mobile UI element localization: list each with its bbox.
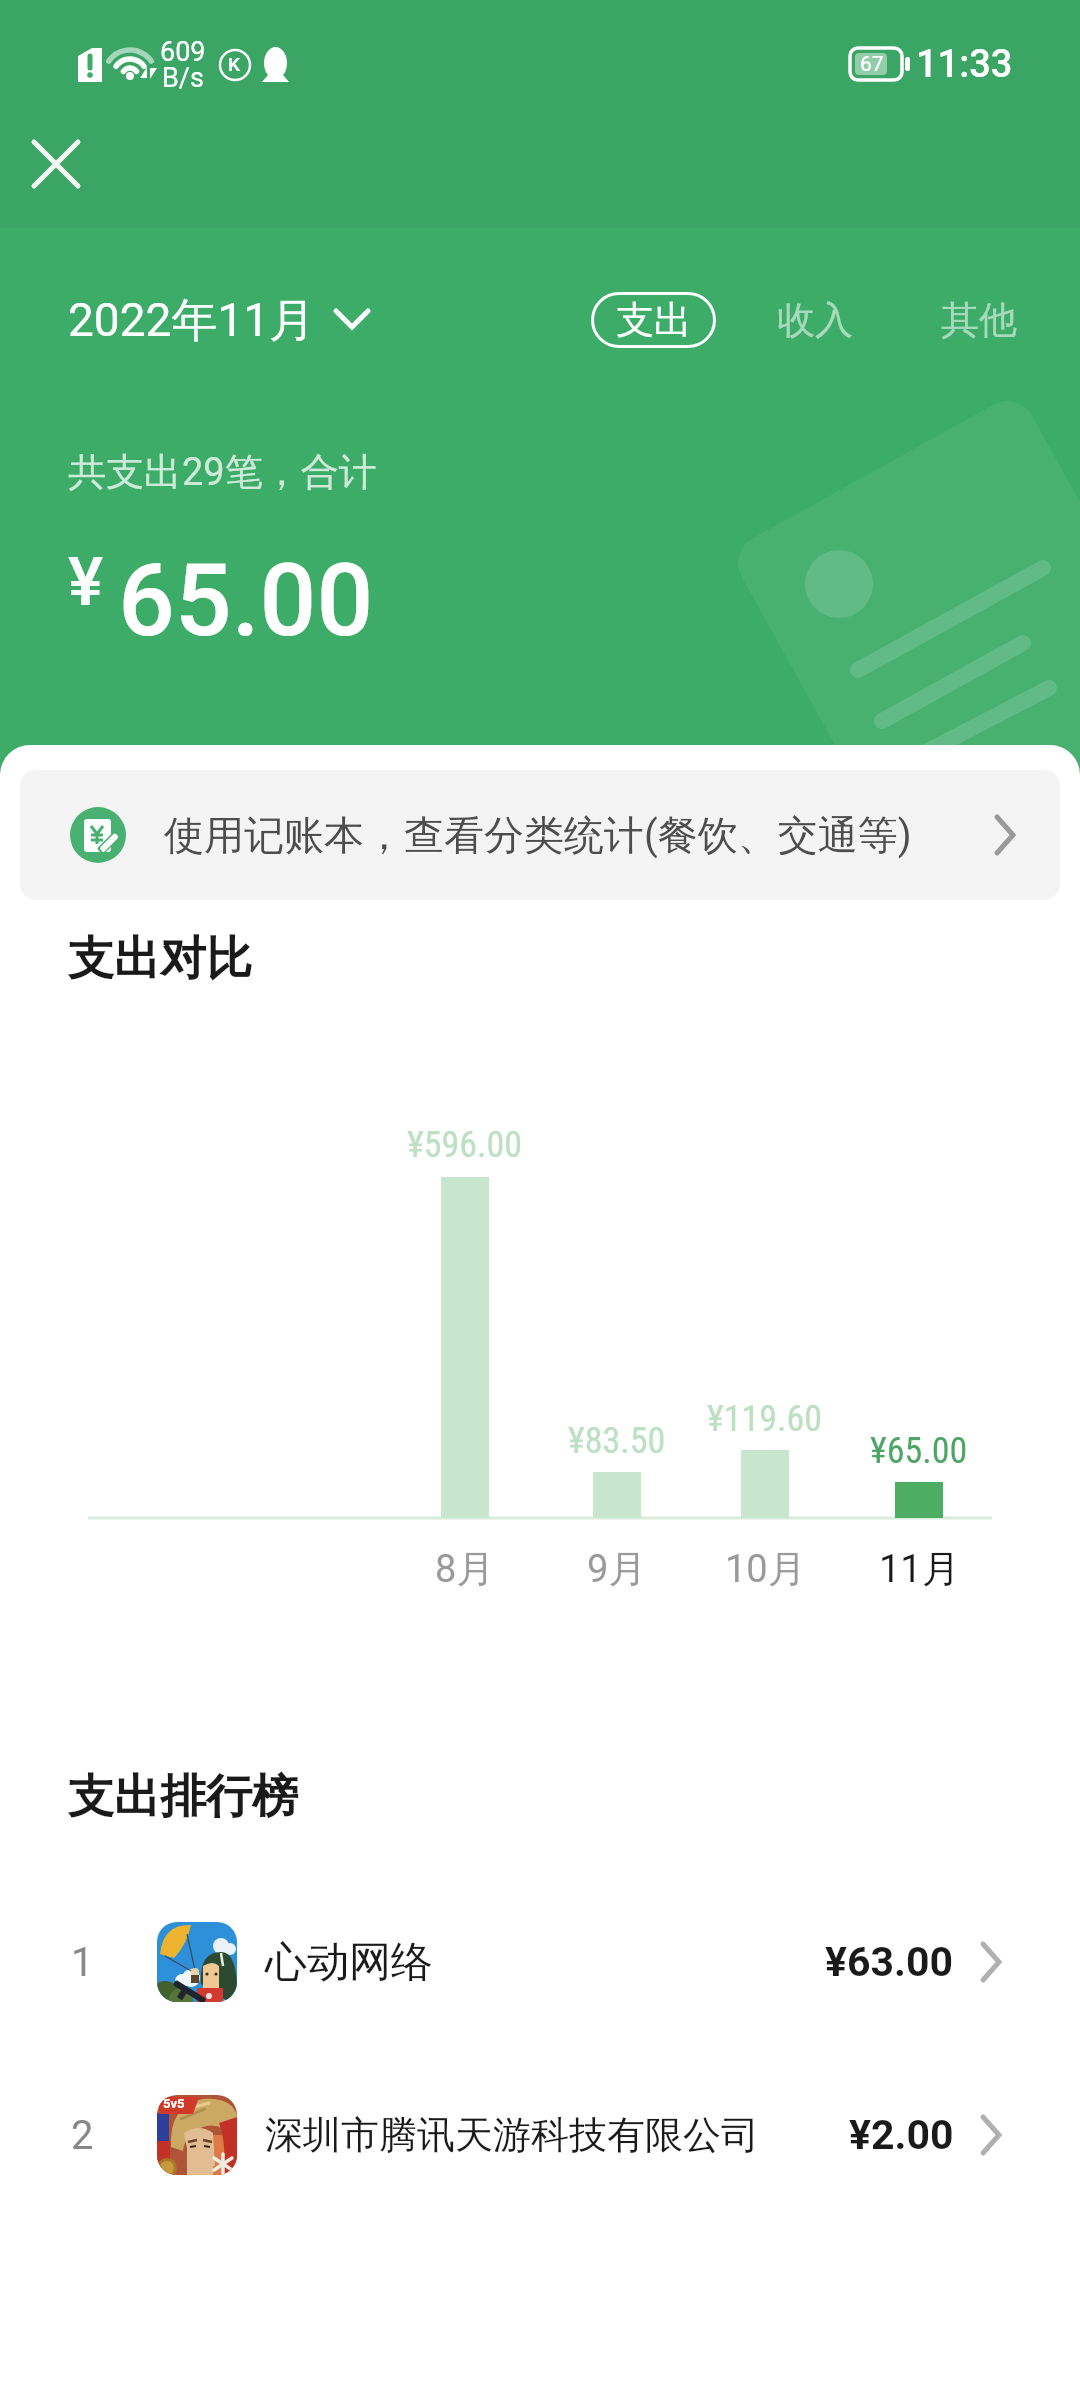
staticText: 10月	[725, 1545, 806, 1593]
staticText: ¥596.00	[407, 1124, 523, 1166]
staticText: 8月	[435, 1545, 495, 1593]
button[interactable]: 支出	[591, 292, 716, 348]
staticText: 深圳市腾讯天游科技有限公司	[265, 2111, 759, 2159]
staticText: 11月	[879, 1545, 960, 1593]
staticText: 共支出29笔，合计	[68, 448, 377, 496]
staticText: K	[228, 53, 240, 75]
staticText: 2	[71, 2112, 94, 2159]
staticText: ¥119.60	[707, 1398, 823, 1440]
staticText: ¥63.00	[825, 1938, 954, 1986]
staticText: 1	[71, 1939, 94, 1986]
staticText: 67	[860, 52, 884, 77]
staticText: ¥2.00	[849, 2111, 954, 2159]
staticText: 收入	[777, 296, 853, 344]
button[interactable]: 2	[0, 2075, 1080, 2195]
staticText: ¥	[68, 544, 104, 621]
staticText: 9月	[587, 1545, 647, 1593]
button[interactable]: 其他	[934, 292, 1024, 348]
button[interactable]	[32, 140, 80, 188]
staticText: B/s	[162, 62, 204, 94]
staticText: ¥65.00	[870, 1430, 968, 1472]
staticText: 11:33	[916, 42, 1013, 87]
button[interactable]: 2022年11月	[68, 292, 370, 350]
staticText: 其他	[941, 296, 1017, 344]
staticText: 使用记账本，查看分类统计(餐饮、交通等)	[164, 810, 912, 860]
staticText: 支出	[616, 296, 692, 344]
staticText: 5v5	[163, 2096, 185, 2111]
button[interactable]: 收入	[770, 292, 860, 348]
staticText: 2022年11月	[68, 292, 316, 350]
staticText: ¥83.50	[568, 1420, 666, 1462]
staticText: 支出排行榜	[68, 1768, 298, 1826]
button[interactable]: 1	[0, 1902, 1080, 2022]
staticText: 65.00	[118, 542, 374, 659]
staticText: 心动网络	[265, 1936, 433, 1989]
staticText: 609	[160, 36, 206, 68]
button[interactable]: 使用记账本，查看分类统计(餐饮、交通等)	[20, 770, 1060, 900]
staticText: 支出对比	[68, 930, 252, 988]
